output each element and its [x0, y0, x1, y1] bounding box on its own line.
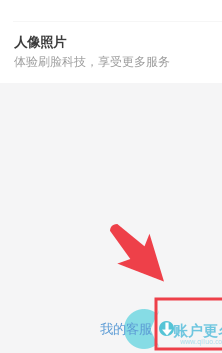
staticText: 人像照片	[14, 34, 66, 50]
staticText: 账户更名	[173, 322, 222, 340]
button[interactable]: Download	[159, 321, 174, 336]
staticText: 体验刷脸科技，享受更多服务	[14, 54, 170, 69]
staticText: 我的客服	[100, 321, 152, 337]
staticText: www.qiluo.com	[180, 337, 222, 346]
button[interactable]: 我的客服	[100, 322, 154, 336]
